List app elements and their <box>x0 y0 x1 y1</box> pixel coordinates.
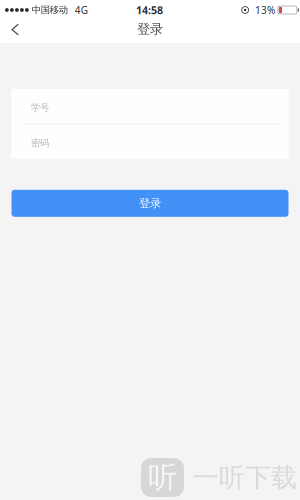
staticText: 学号 <box>31 102 49 114</box>
staticText: 14:58 <box>136 3 163 17</box>
staticText: 听 <box>148 459 177 496</box>
staticText: 登录 <box>139 196 161 210</box>
staticText: 4G <box>75 3 88 17</box>
staticText: 密码 <box>31 137 49 149</box>
staticText: 13% <box>255 3 275 17</box>
button[interactable]: 登录 <box>11 190 288 217</box>
staticText: 中国移动 <box>32 4 68 16</box>
staticText: 登录 <box>137 21 163 37</box>
staticText: 一听下载 <box>193 461 297 494</box>
button[interactable]: Back <box>0 20 32 43</box>
